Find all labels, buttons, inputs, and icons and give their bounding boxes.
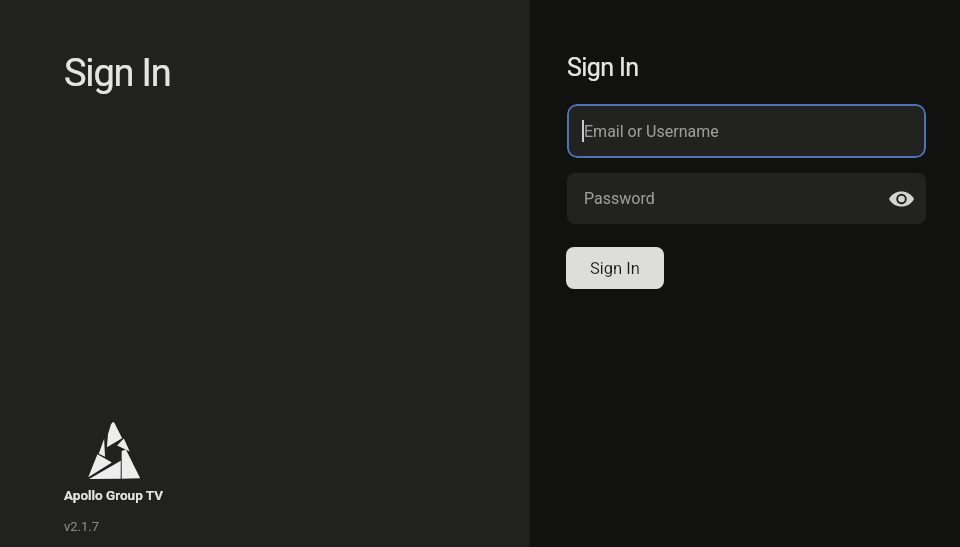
staticText: Sign In	[64, 51, 171, 96]
staticText: Email or Username	[584, 122, 719, 141]
button[interactable]: Sign In	[566, 247, 664, 289]
staticText: Sign In	[590, 259, 640, 278]
staticText: Password	[584, 189, 655, 208]
button[interactable]: Password	[567, 173, 926, 224]
staticText: Sign In	[567, 53, 639, 82]
button[interactable]: Show password	[886, 184, 916, 214]
button[interactable]: Email or Username	[567, 104, 926, 158]
staticText: Apollo Group TV	[64, 487, 163, 503]
staticText: v2.1.7	[64, 519, 100, 534]
